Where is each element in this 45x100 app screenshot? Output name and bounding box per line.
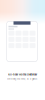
staticText: All-new Home Overview [8, 73, 37, 76]
staticText: Everything you need, at a glance. [7, 78, 38, 80]
